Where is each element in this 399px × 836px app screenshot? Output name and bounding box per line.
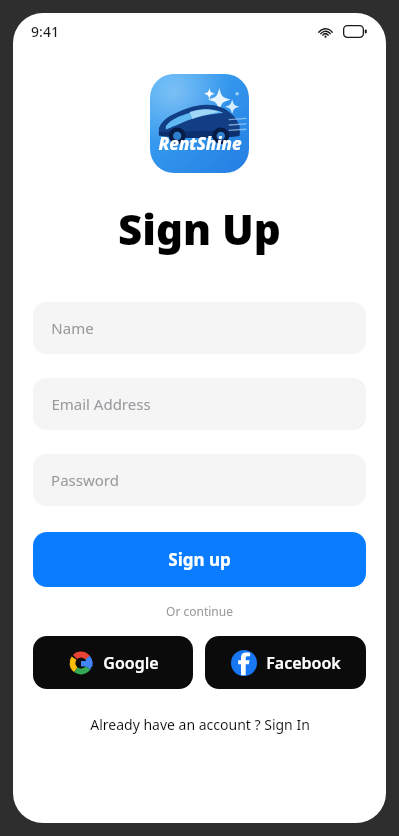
button[interactable]: Facebook	[205, 636, 366, 689]
button[interactable]: Email Address	[33, 378, 366, 430]
staticText: Email Address	[51, 394, 151, 414]
button[interactable]: Password	[33, 454, 366, 506]
staticText: Sign up	[168, 548, 231, 571]
staticText: RentShine	[158, 132, 242, 155]
staticText: Facebook	[266, 652, 341, 674]
button[interactable]: Sign up	[33, 532, 366, 587]
button[interactable]: Name	[33, 302, 366, 354]
staticText: Already have an account ? Sign In	[90, 715, 310, 734]
staticText: Password	[51, 470, 119, 490]
staticText: Or continue	[166, 603, 233, 619]
staticText: Google	[103, 652, 159, 674]
button[interactable]: Google	[33, 636, 193, 689]
staticText: Sign Up	[118, 200, 281, 257]
staticText: Name	[51, 318, 94, 338]
button[interactable]: Already have an account ? Sign In	[13, 715, 386, 734]
staticText: 9:41	[31, 22, 59, 41]
